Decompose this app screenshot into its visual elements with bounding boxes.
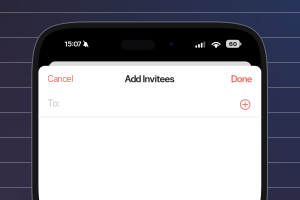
staticText: To: [48, 97, 60, 109]
staticText: Done [231, 73, 252, 84]
button[interactable]: Add contact [238, 95, 253, 110]
button[interactable]: Cancel [46, 70, 76, 88]
staticText: 60 [229, 40, 237, 47]
staticText: Add Invitees [125, 73, 175, 84]
button[interactable]: Done [229, 70, 254, 88]
staticText: 15:07 [64, 39, 81, 48]
staticText: Cancel [48, 74, 74, 84]
